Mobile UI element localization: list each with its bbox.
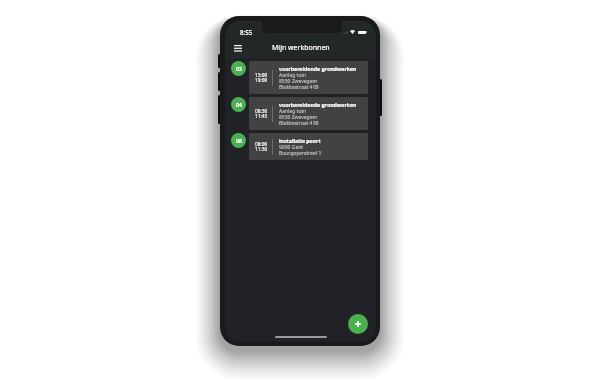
staticText: 06 — [236, 137, 242, 144]
staticText: 04 — [236, 101, 242, 108]
staticText: voorbereidende grondwerken Aanleg tuin 8… — [279, 101, 357, 126]
button[interactable]: 03 — [231, 61, 368, 94]
staticText: voorbereidende grondwerken Aanleg tuin 8… — [279, 65, 357, 90]
staticText: 13:00 19:00 — [255, 72, 268, 84]
staticText: 08:30 11:45 — [255, 108, 268, 120]
staticText: 03 — [236, 65, 242, 72]
button[interactable]: 06 — [231, 133, 368, 160]
staticText: installatie poort 9000 Gent Bourgoyendre… — [279, 137, 322, 156]
staticText: Mijn werkbonnen — [272, 43, 330, 53]
staticText: 8:55 — [240, 28, 253, 36]
button[interactable]: Menu — [234, 38, 246, 58]
staticText: 08:00 11:30 — [255, 141, 268, 153]
button[interactable]: 04 — [231, 97, 368, 130]
button[interactable]: Nieuwe werkbon toevoegen — [348, 314, 368, 334]
